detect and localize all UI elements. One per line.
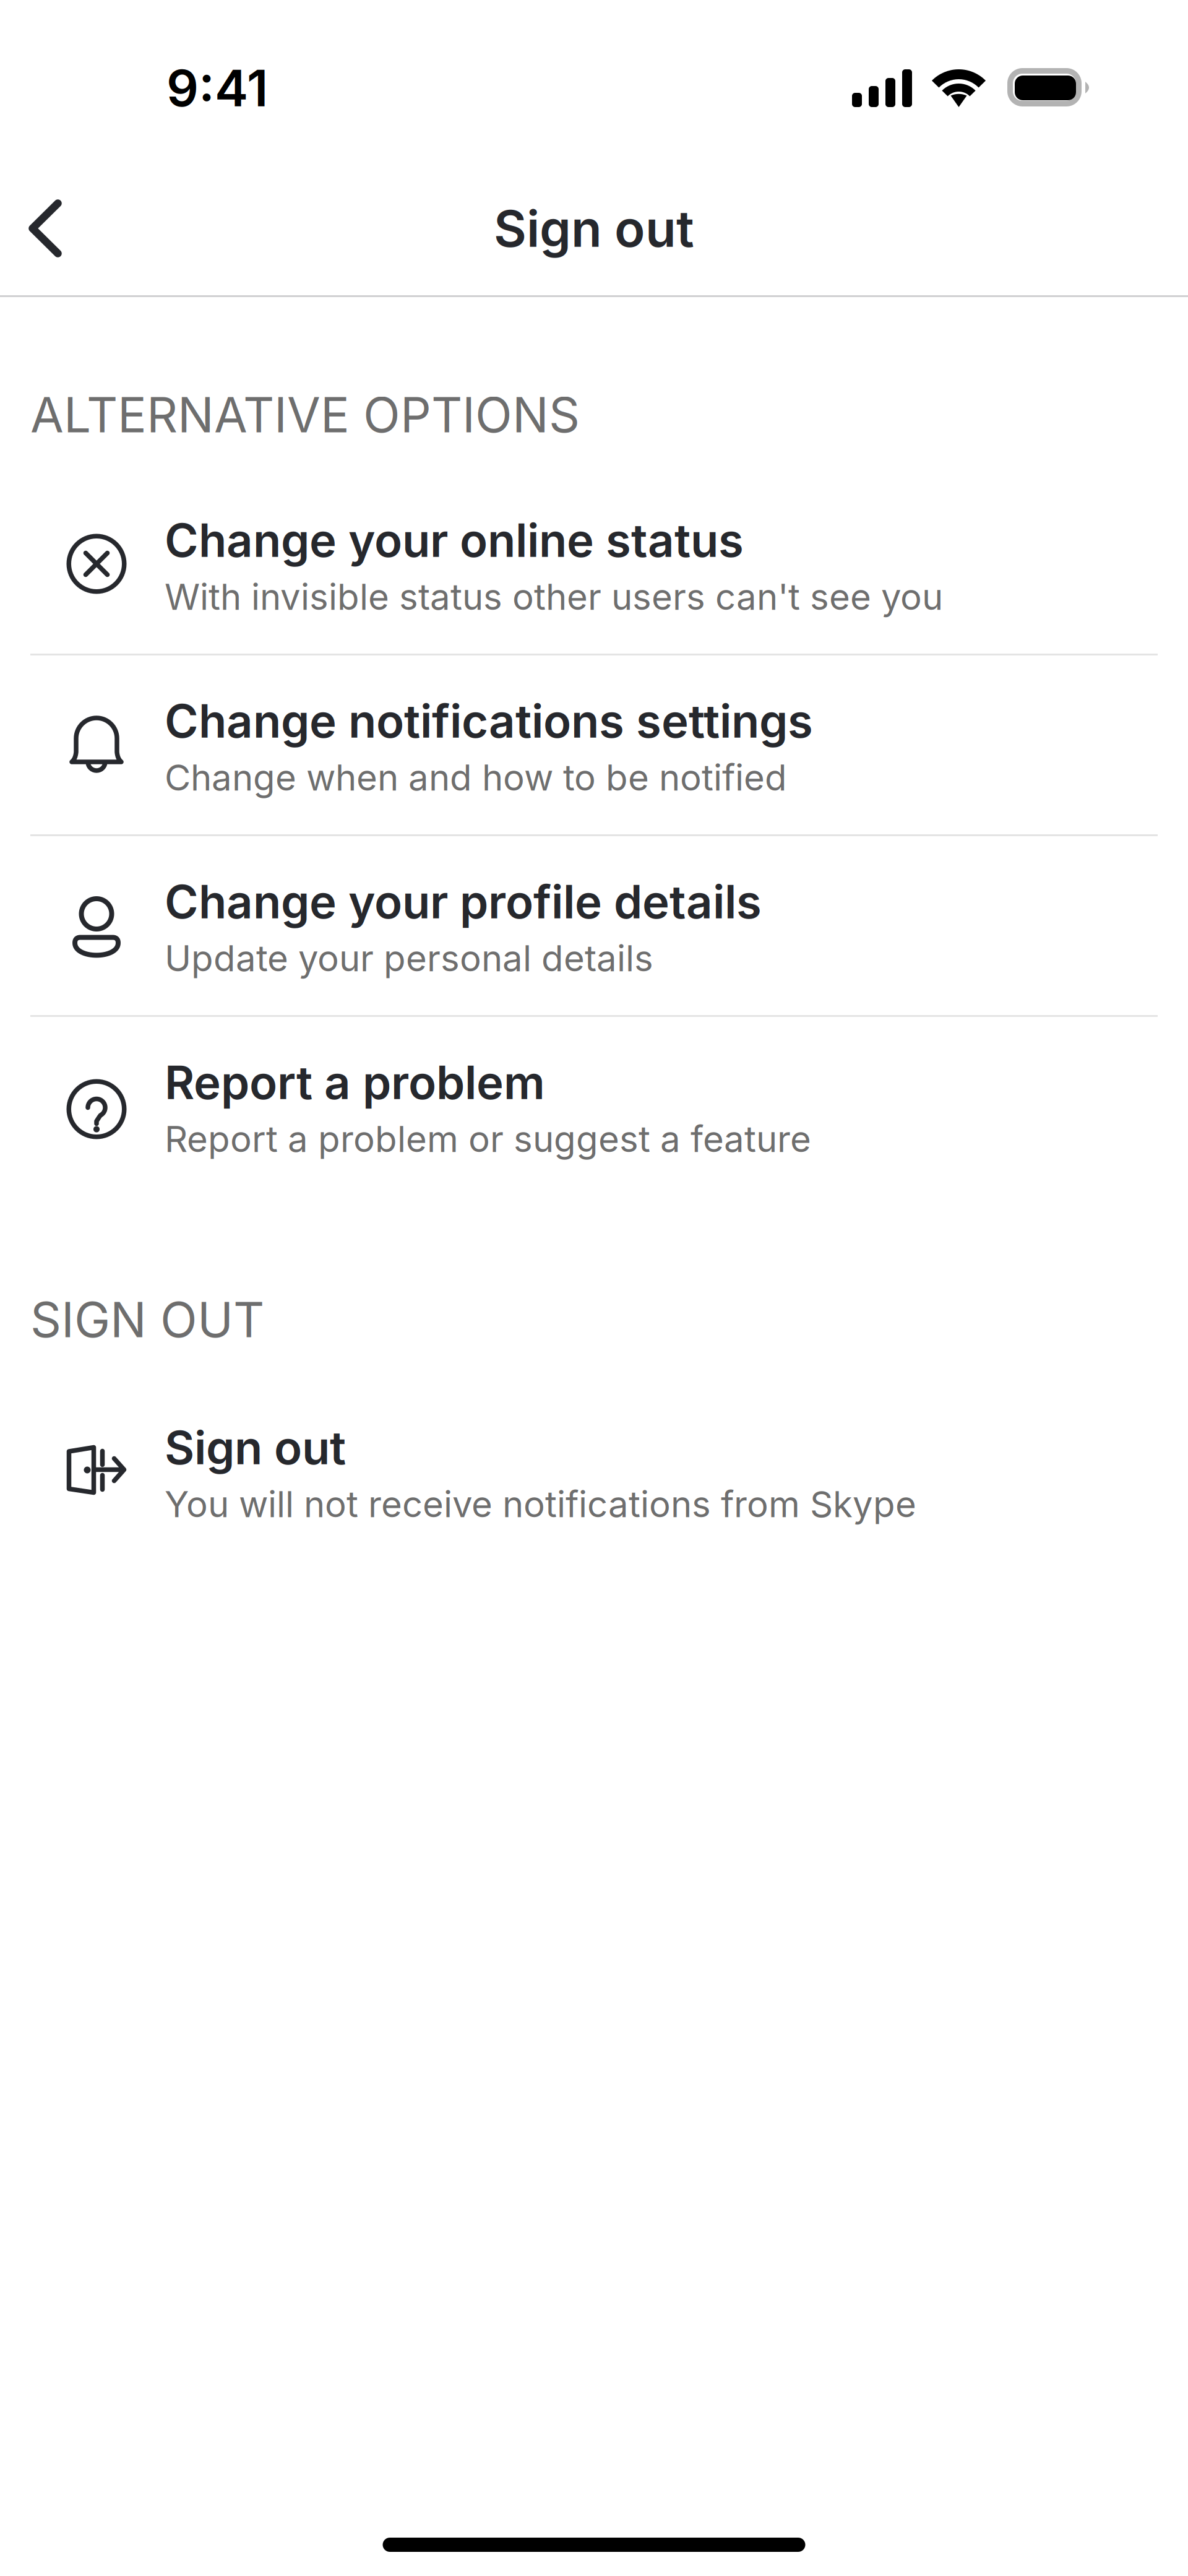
staticText: Sign out — [165, 1420, 346, 1475]
staticText: With invisible status other users can't … — [165, 575, 943, 618]
staticText: Report a problem — [165, 1055, 545, 1110]
button[interactable]: Change your profile details — [0, 834, 1188, 1015]
staticText: Change notifications settings — [165, 693, 813, 749]
button[interactable]: Sign out — [0, 1380, 1188, 1561]
staticText: Report a problem or suggest a feature — [165, 1117, 811, 1161]
staticText: SIGN OUT — [30, 1290, 264, 1349]
button[interactable]: Change your online status — [0, 473, 1188, 654]
staticText: Update your personal details — [165, 936, 653, 980]
staticText: 9:41 — [166, 58, 268, 118]
button[interactable]: Back — [0, 179, 99, 279]
staticText: Change when and how to be notified — [165, 756, 787, 799]
staticText: Change your online status — [165, 512, 744, 568]
button[interactable]: Report a problem — [0, 1015, 1188, 1196]
staticText: Sign out — [494, 198, 694, 259]
button[interactable]: Change notifications settings — [0, 654, 1188, 834]
staticText: ALTERNATIVE OPTIONS — [30, 386, 580, 444]
staticText: You will not receive notifications from … — [165, 1482, 916, 1526]
staticText: Change your profile details — [165, 874, 762, 929]
